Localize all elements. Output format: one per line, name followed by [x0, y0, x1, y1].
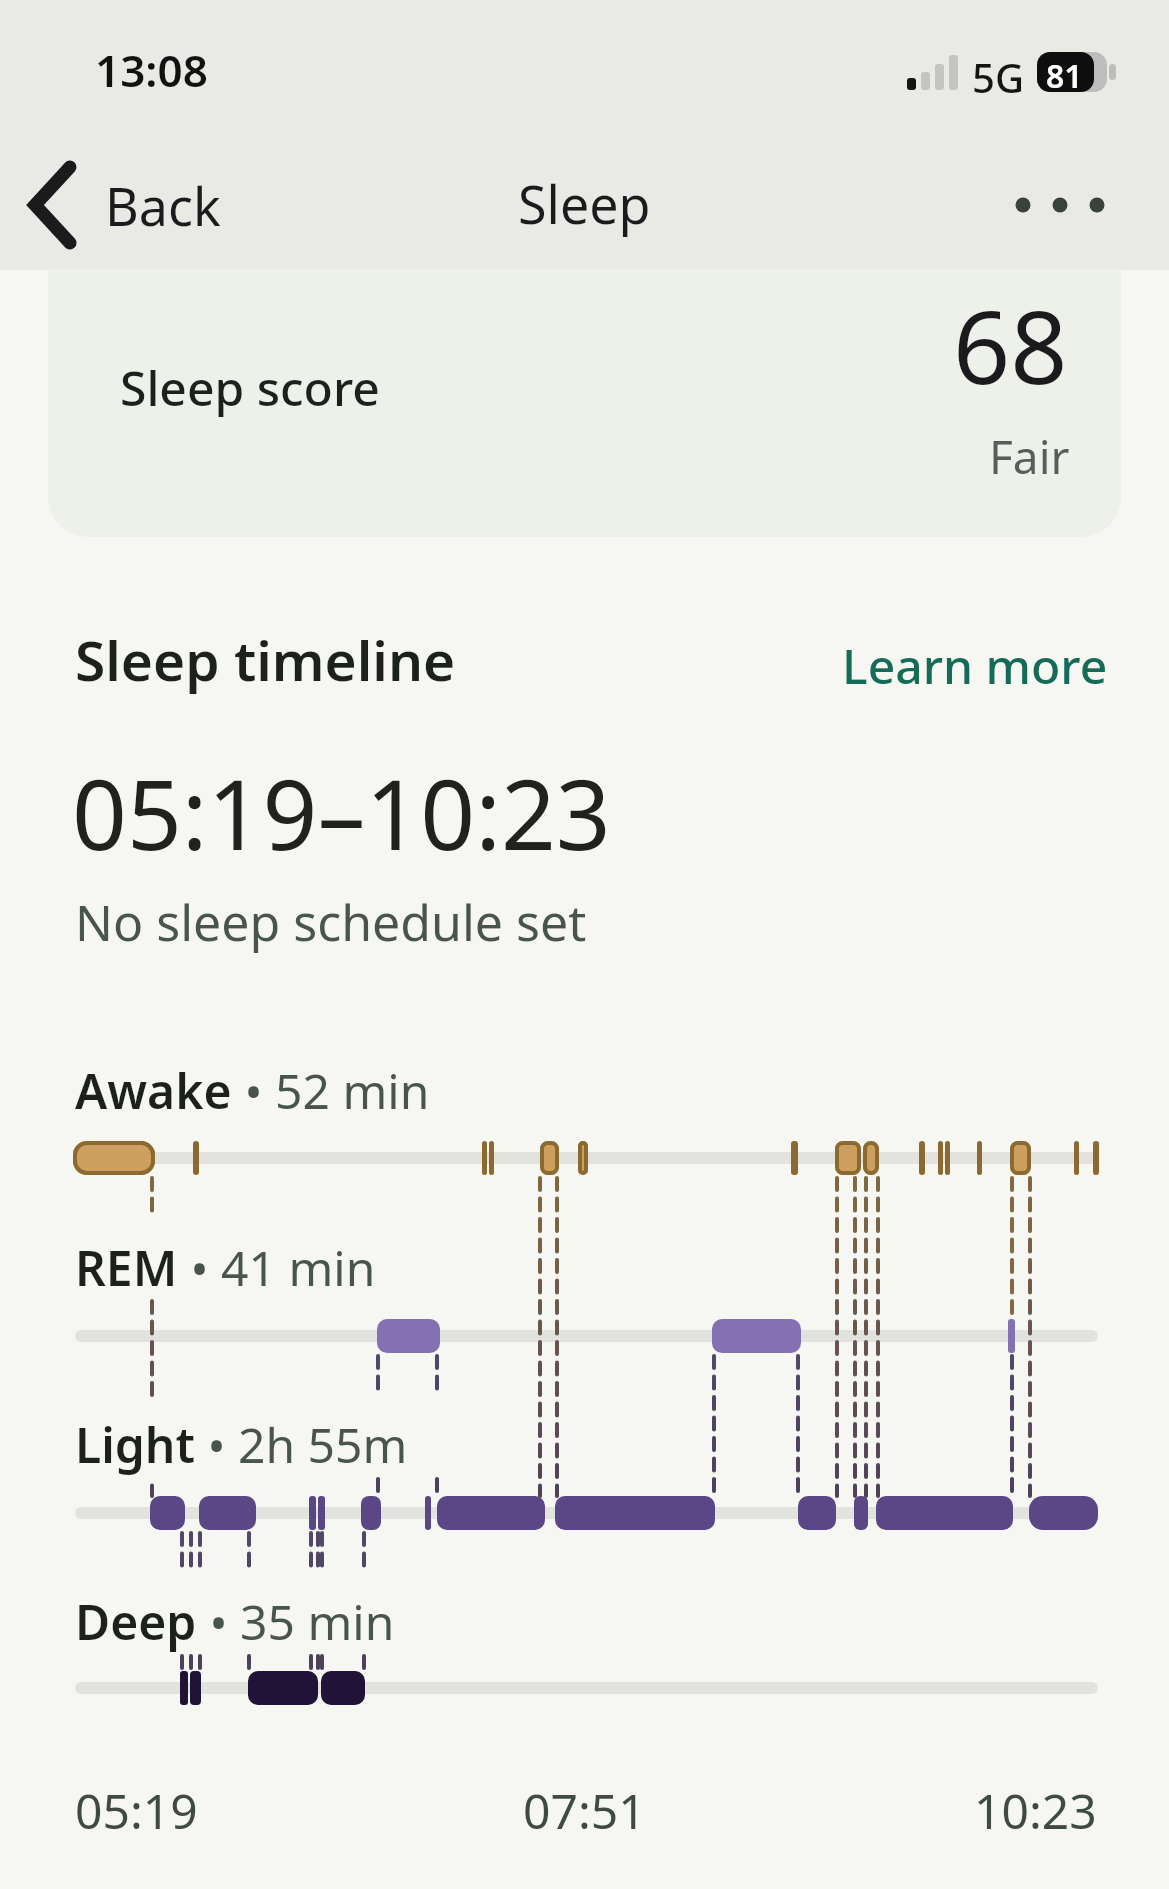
staticText: Learn more	[842, 633, 1108, 698]
staticText: • 35 min	[197, 1589, 395, 1654]
staticText: • 41 min	[178, 1235, 376, 1300]
staticText: REM	[75, 1235, 178, 1300]
button[interactable]: Learn more	[508, 633, 1108, 698]
staticText: 5G	[972, 50, 1024, 104]
staticText: 05:19–10:23	[72, 747, 611, 878]
staticText: Sleep	[518, 168, 651, 239]
staticText: Deep	[75, 1589, 197, 1654]
staticText: • 52 min	[232, 1058, 430, 1123]
staticText: • 2h 55m	[195, 1412, 408, 1477]
staticText: Awake	[75, 1058, 232, 1123]
staticText: 10:23	[974, 1778, 1097, 1843]
staticText: 13:08	[95, 40, 208, 100]
staticText: Sleep score	[120, 355, 380, 420]
button[interactable]	[48, 270, 1121, 537]
staticText: 07:51	[523, 1778, 646, 1843]
staticText: Fair	[989, 425, 1070, 488]
staticText: 05:19	[75, 1778, 198, 1843]
staticText: 81	[1046, 54, 1083, 98]
staticText: Back	[105, 170, 221, 241]
staticText: 68	[953, 277, 1068, 413]
staticText: Light	[75, 1412, 195, 1477]
staticText: Sleep timeline	[75, 622, 456, 697]
staticText: No sleep schedule set	[75, 888, 587, 956]
button[interactable]	[1000, 170, 1120, 240]
button[interactable]: Back	[25, 150, 285, 260]
